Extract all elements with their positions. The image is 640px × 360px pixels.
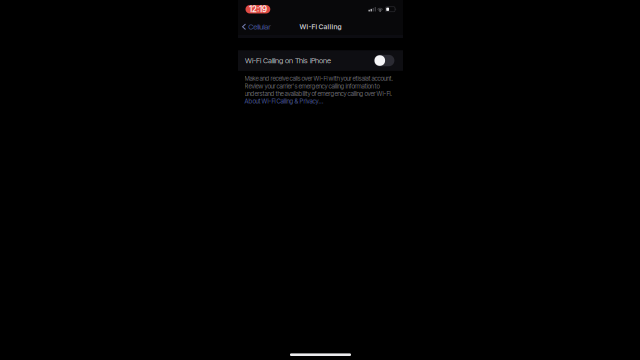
staticText: Make and receive calls over Wi-Fi with y… xyxy=(245,75,393,97)
button[interactable]: Cellular xyxy=(238,19,275,34)
staticText: About Wi-Fi Calling & Privacy… xyxy=(245,97,324,105)
staticText: Wi-Fi Calling xyxy=(299,23,341,31)
staticText: Wi-Fi Calling on This iPhone xyxy=(245,56,331,65)
staticText: 12:19 xyxy=(249,4,267,14)
staticText: Cellular xyxy=(248,22,271,31)
button[interactable]: Wi-Fi Calling on This iPhone xyxy=(238,50,403,71)
button[interactable]: Return to call, 12:19 xyxy=(245,5,270,13)
button[interactable]: About Wi-Fi Calling & Privacy… xyxy=(245,97,324,105)
